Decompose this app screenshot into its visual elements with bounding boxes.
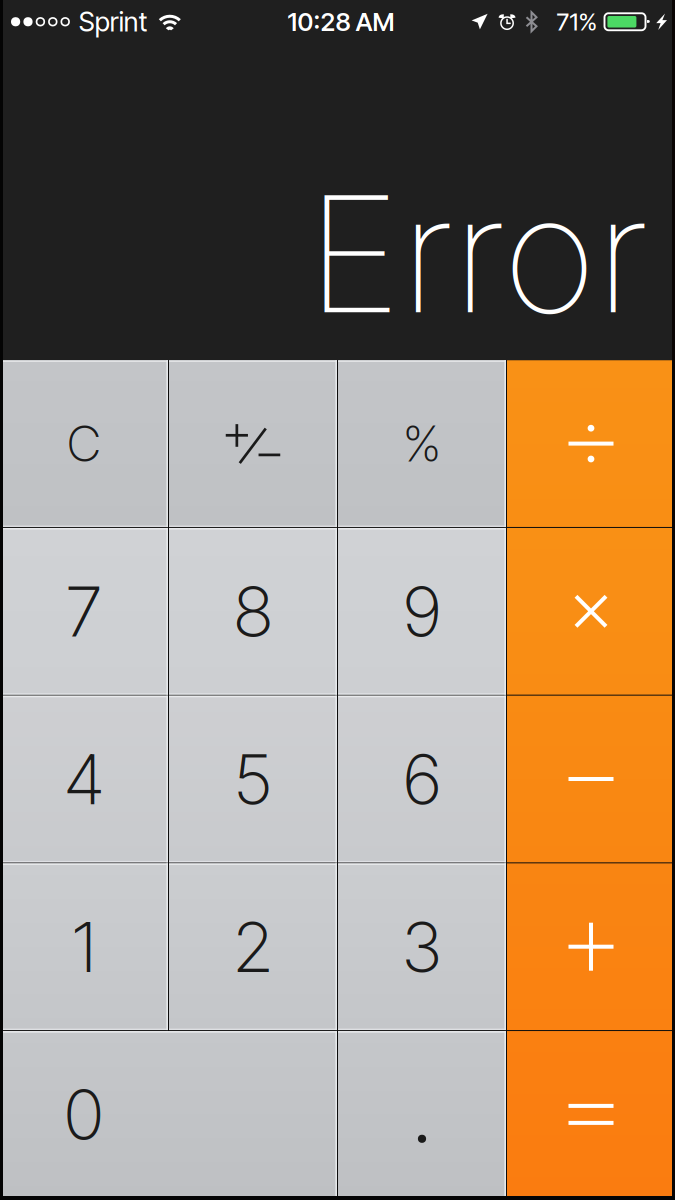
staticText: 9	[402, 569, 441, 653]
staticText: 5	[233, 737, 272, 821]
button[interactable]: 8	[169, 528, 337, 695]
staticText: 4	[63, 737, 104, 821]
button[interactable]: 7	[0, 528, 168, 695]
button[interactable]: Divide	[507, 360, 675, 527]
button[interactable]: Add	[507, 863, 675, 1030]
staticText: 10:28 AM	[287, 6, 394, 37]
button[interactable]: 0	[0, 1031, 337, 1198]
button[interactable]: 6	[338, 696, 506, 862]
button[interactable]: Plus minus	[169, 360, 337, 527]
staticText: Sprint	[79, 6, 148, 38]
button[interactable]: 2	[169, 863, 337, 1030]
button[interactable]: 1	[0, 863, 168, 1030]
staticText: 8	[233, 569, 273, 653]
button[interactable]: 9	[338, 528, 506, 695]
button[interactable]: 3	[338, 863, 506, 1030]
staticText: 71%	[556, 7, 597, 36]
staticText: 3	[401, 905, 443, 989]
button[interactable]: 5	[169, 696, 337, 862]
button[interactable]: Multiply	[507, 528, 675, 695]
button[interactable]: Decimal point	[338, 1031, 506, 1198]
button[interactable]: Equals	[507, 1031, 675, 1198]
button[interactable]: C	[0, 360, 168, 527]
button[interactable]: %	[338, 360, 506, 527]
staticText: 2	[232, 905, 273, 989]
staticText: %	[403, 414, 441, 473]
button[interactable]: 4	[0, 696, 168, 862]
staticText: 7	[65, 569, 102, 653]
button[interactable]: Subtract	[507, 696, 675, 862]
staticText: 6	[402, 737, 441, 821]
staticText: C	[66, 414, 101, 473]
staticText: 1	[71, 905, 96, 989]
staticText: Error	[307, 156, 648, 351]
staticText: 0	[63, 1072, 104, 1156]
